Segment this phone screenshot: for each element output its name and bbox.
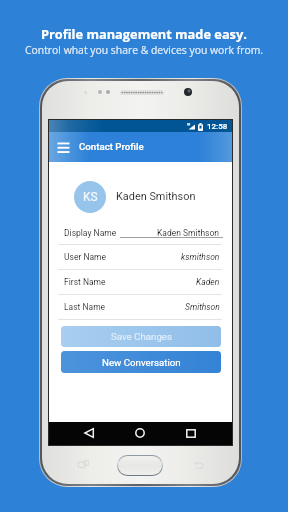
staticText: Control what you share & devices you wor… (25, 43, 264, 57)
staticText: Kaden Smithson (157, 228, 220, 238)
button[interactable]: Recent apps (77, 460, 89, 469)
staticText: Last Name (64, 302, 106, 312)
staticText: Profile management made easy. (41, 25, 247, 42)
staticText: 12:58 (207, 122, 228, 131)
staticText: Smithson (185, 302, 220, 312)
staticText: New Conversation (102, 357, 181, 368)
button[interactable]: Home (117, 455, 163, 476)
staticText: Display Name (64, 228, 117, 238)
button[interactable]: New Conversation (61, 351, 221, 373)
staticText: KS (83, 190, 98, 204)
button[interactable]: Back (76, 422, 102, 444)
staticText: ksmithson (181, 252, 220, 262)
staticText: User Name (64, 252, 107, 262)
button[interactable]: Back (193, 461, 204, 470)
button[interactable]: Open navigation menu (49, 132, 232, 162)
staticText: Save Changes (111, 331, 172, 342)
staticText: Kaden (196, 277, 220, 287)
button[interactable]: Recent apps (178, 423, 204, 444)
button[interactable]: Open navigation menu (57, 141, 70, 153)
staticText: First Name (64, 277, 106, 287)
button[interactable]: Home (127, 422, 153, 444)
staticText: Kaden Smithson (116, 190, 196, 203)
staticText: Contact Profile (79, 141, 144, 152)
button[interactable]: Save Changes (61, 326, 221, 347)
